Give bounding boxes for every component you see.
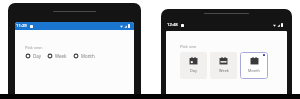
staticText: Month	[248, 68, 260, 73]
staticText: 12:48	[167, 22, 178, 28]
button[interactable]: Week	[210, 52, 237, 79]
button[interactable]: Month	[73, 53, 95, 59]
button[interactable]: Week	[47, 53, 67, 59]
staticText: 11:29	[16, 23, 27, 29]
staticText: Day	[33, 53, 41, 59]
button[interactable]: Day	[180, 52, 207, 79]
button[interactable]: Month	[240, 52, 268, 79]
staticText: Week	[55, 53, 67, 59]
staticText: Month	[81, 53, 95, 59]
staticText: Pick one:	[25, 45, 43, 51]
staticText: Week	[219, 68, 229, 73]
staticText: Day	[190, 68, 197, 73]
button[interactable]: Day	[25, 53, 41, 59]
staticText: Pick one	[180, 44, 197, 50]
